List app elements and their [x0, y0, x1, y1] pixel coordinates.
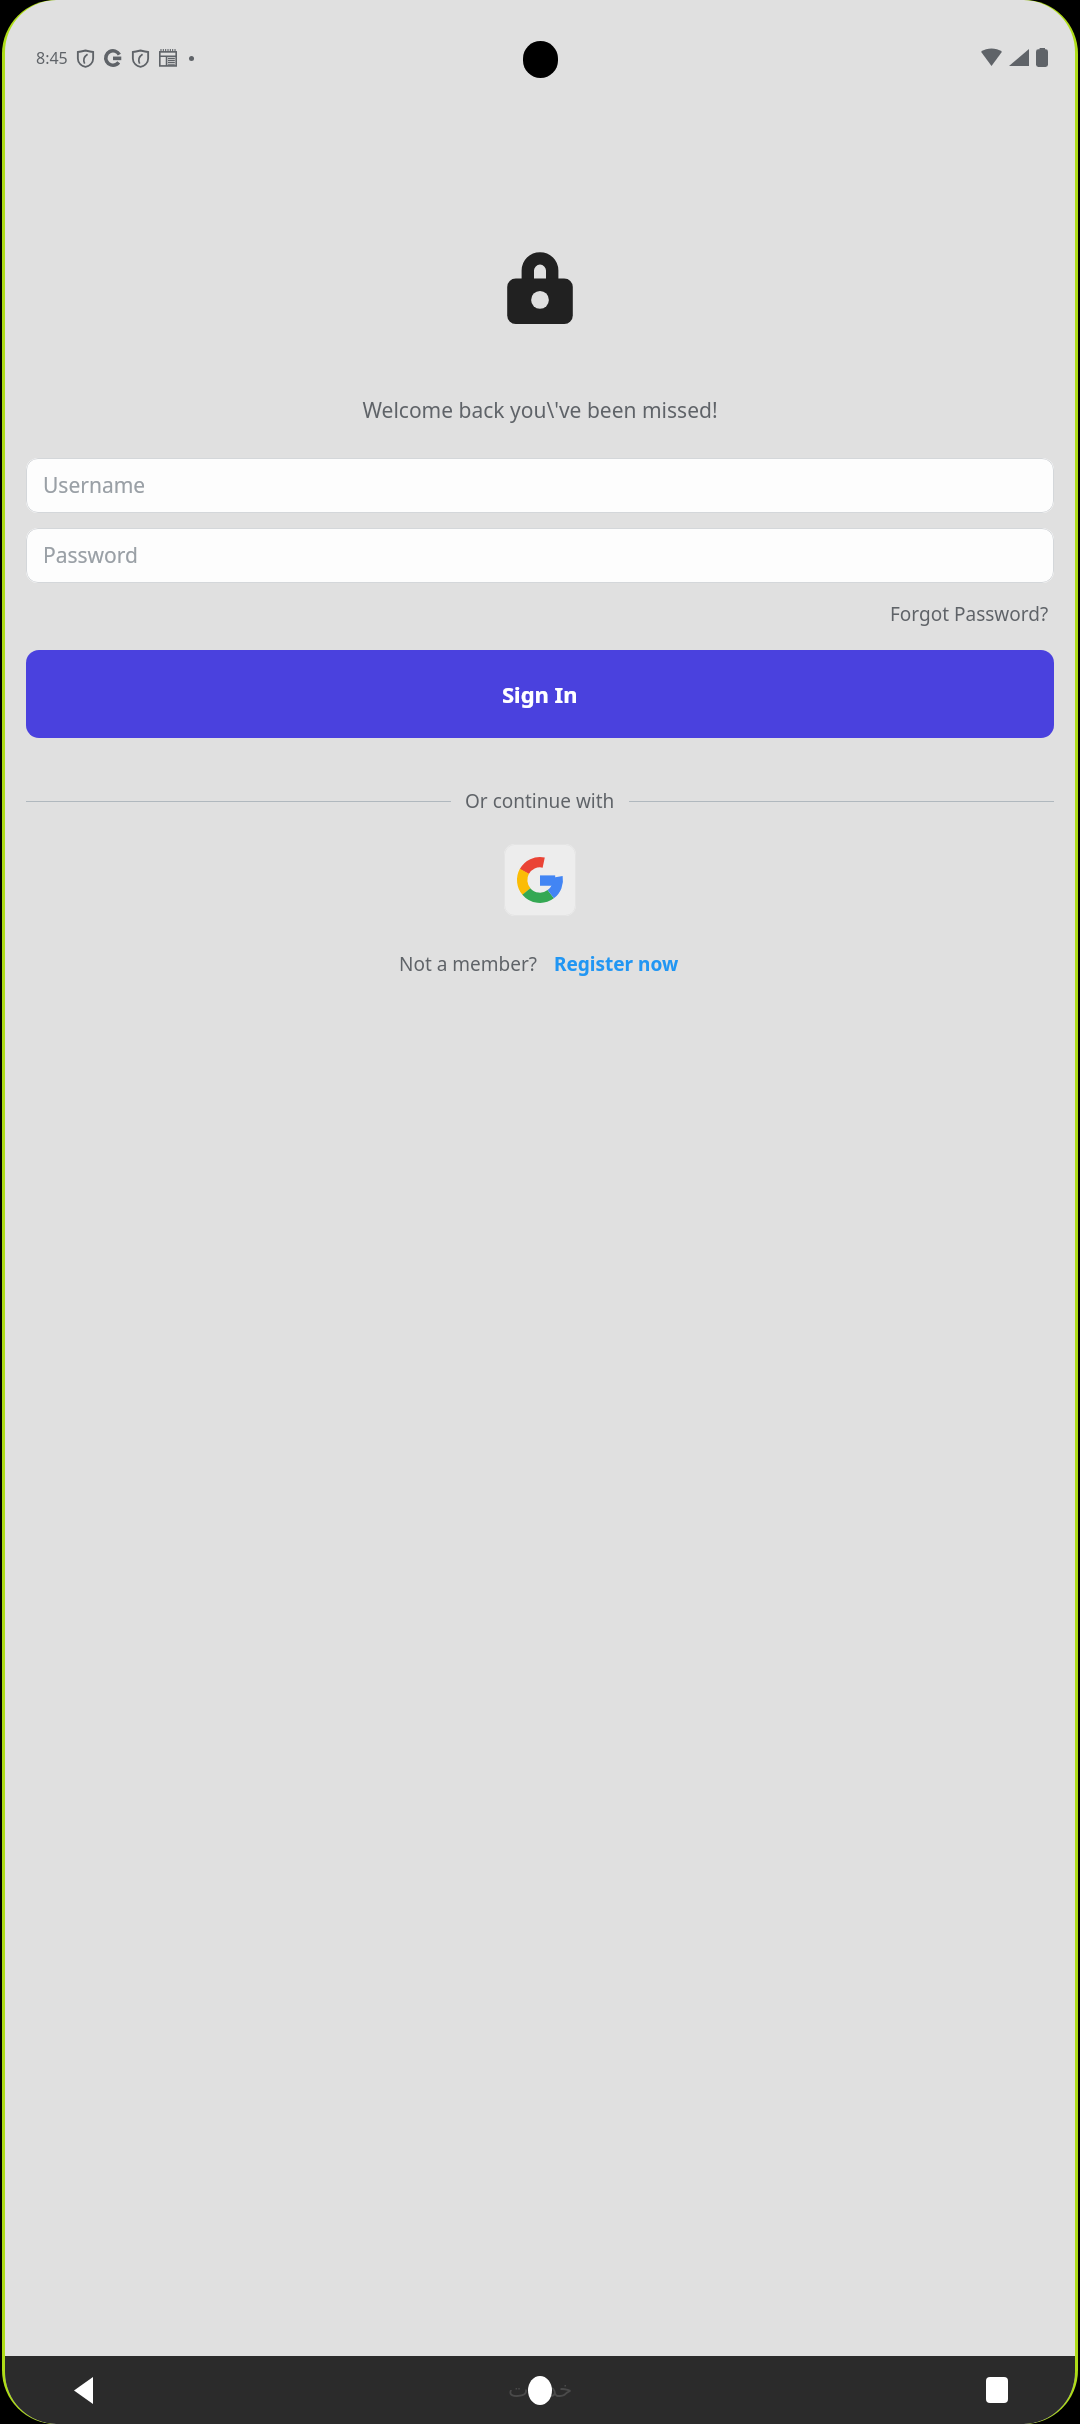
staticText: 8:45 — [36, 47, 68, 69]
button[interactable]: Back — [61, 2368, 105, 2412]
staticText: خدمات — [508, 2377, 573, 2403]
button[interactable]: Forgot Password? — [886, 597, 1053, 631]
button[interactable]: Continue with Google — [504, 844, 576, 916]
staticText: Not a member? — [399, 951, 538, 977]
staticText: Sign In — [502, 679, 578, 709]
button[interactable]: Username — [26, 458, 1054, 513]
button[interactable]: Home — [518, 2368, 562, 2412]
button[interactable]: Sign In — [26, 650, 1054, 738]
button[interactable]: Register now — [551, 948, 682, 980]
other: Lock — [500, 250, 580, 324]
staticText: Forgot Password? — [890, 601, 1049, 627]
button[interactable]: Password — [26, 528, 1054, 583]
staticText: Password — [43, 541, 138, 570]
button[interactable]: Recent apps — [975, 2368, 1019, 2412]
staticText: Or continue with — [465, 788, 615, 814]
staticText: Username — [43, 471, 146, 500]
staticText: Welcome back you\'ve been missed! — [362, 396, 718, 425]
staticText: Register now — [554, 951, 679, 977]
